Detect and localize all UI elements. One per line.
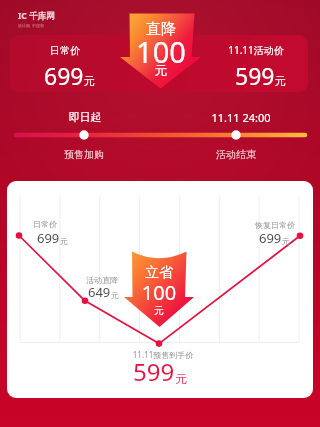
- staticText: 11.11 24:00: [151, 110, 320, 125]
- staticText: 活动直降: [12, 275, 192, 285]
- staticText: 即日起: [0, 110, 175, 124]
- staticText: 元: [84, 74, 95, 88]
- staticText: 日常价: [0, 219, 135, 229]
- staticText: 100: [69, 279, 249, 306]
- staticText: 699: [44, 60, 84, 91]
- staticText: 直降: [71, 20, 251, 39]
- staticText: 599: [235, 60, 275, 91]
- staticText: 100: [71, 32, 251, 71]
- staticText: 699: [37, 229, 60, 247]
- staticText: 元: [69, 304, 249, 317]
- staticText: 日常价: [0, 44, 155, 57]
- staticText: 元: [275, 74, 286, 88]
- staticText: 599: [133, 355, 175, 388]
- staticText: 恢复日常价: [185, 220, 320, 230]
- staticText: 元: [60, 236, 68, 246]
- staticText: 元: [175, 371, 187, 386]
- staticText: 699: [259, 229, 282, 247]
- staticText: 元: [282, 236, 290, 246]
- staticText: 元: [71, 62, 251, 78]
- staticText: 立省: [69, 264, 249, 282]
- staticText: 11.11活动价: [166, 43, 320, 57]
- staticText: 预售加购: [0, 148, 174, 161]
- staticText: 649: [88, 283, 111, 301]
- staticText: 元: [111, 290, 119, 300]
- button[interactable]: Logo: [18, 10, 64, 28]
- staticText: 11.11预售到手价: [73, 349, 253, 360]
- staticText: IC 千库网: [18, 10, 55, 22]
- staticText: 设计网 不侵权: [18, 23, 45, 28]
- staticText: 活动结束: [146, 148, 320, 161]
